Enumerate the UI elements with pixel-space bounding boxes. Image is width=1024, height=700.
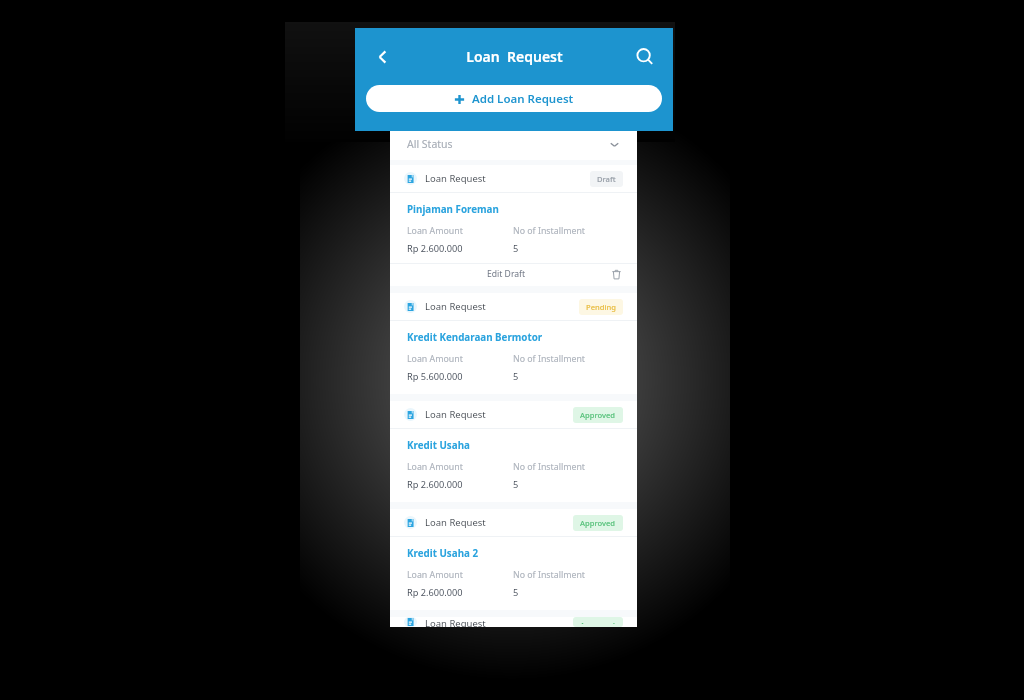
staticText: Loan Request xyxy=(425,172,486,185)
staticText: Pending xyxy=(586,302,616,312)
staticText: Approved xyxy=(580,518,616,528)
button[interactable]: Edit Draft xyxy=(483,266,530,282)
staticText: 5 xyxy=(513,370,620,383)
staticText: Kredit Usaha 2 xyxy=(407,547,479,560)
staticText: 5 xyxy=(513,478,620,491)
staticText: Rp 2.600.000 xyxy=(407,478,513,491)
staticText: Loan Amount xyxy=(407,461,513,473)
staticText: Loan Amount xyxy=(407,353,513,365)
staticText: No of Installment xyxy=(513,225,620,237)
staticText: Approved xyxy=(580,410,616,420)
button[interactable]: Back xyxy=(363,37,403,77)
button[interactable]: Loan Request xyxy=(390,165,637,286)
staticText: Rp 5.600.000 xyxy=(407,370,513,383)
button[interactable]: All Status xyxy=(390,128,637,160)
button[interactable]: Search xyxy=(625,37,665,77)
staticText: No of Installment xyxy=(513,353,620,365)
staticText: 5 xyxy=(513,242,620,255)
button[interactable]: Loan Request xyxy=(390,509,637,610)
staticText: Loan Amount xyxy=(407,225,513,237)
staticText: Kredit Usaha xyxy=(407,439,470,452)
staticText: Loan Request xyxy=(425,516,486,529)
staticText: All Status xyxy=(407,137,453,151)
button[interactable]: Add Loan Request xyxy=(366,85,662,112)
staticText: Loan Request xyxy=(425,300,486,313)
button[interactable]: Loan Request xyxy=(390,401,637,502)
staticText: Rp 2.600.000 xyxy=(407,242,513,255)
staticText: Draft xyxy=(597,174,616,184)
staticText: Approved xyxy=(580,620,616,624)
staticText: Pinjaman Foreman xyxy=(407,203,499,216)
staticText: Loan Request xyxy=(425,617,486,627)
staticText: Add Loan Request xyxy=(472,91,574,107)
staticText: 5 xyxy=(513,586,620,599)
staticText: Loan Amount xyxy=(407,569,513,581)
staticText: No of Installment xyxy=(513,461,620,473)
button[interactable]: Loan Request xyxy=(390,293,637,394)
staticText: Edit Draft xyxy=(487,268,526,280)
staticText: No of Installment xyxy=(513,569,620,581)
staticText: Loan Request xyxy=(466,47,563,66)
button[interactable]: Delete xyxy=(609,267,623,281)
staticText: Loan Request xyxy=(425,408,486,421)
button[interactable]: Loan Request xyxy=(390,617,637,627)
staticText: Rp 2.600.000 xyxy=(407,586,513,599)
staticText: Kredit Kendaraan Bermotor xyxy=(407,331,543,344)
